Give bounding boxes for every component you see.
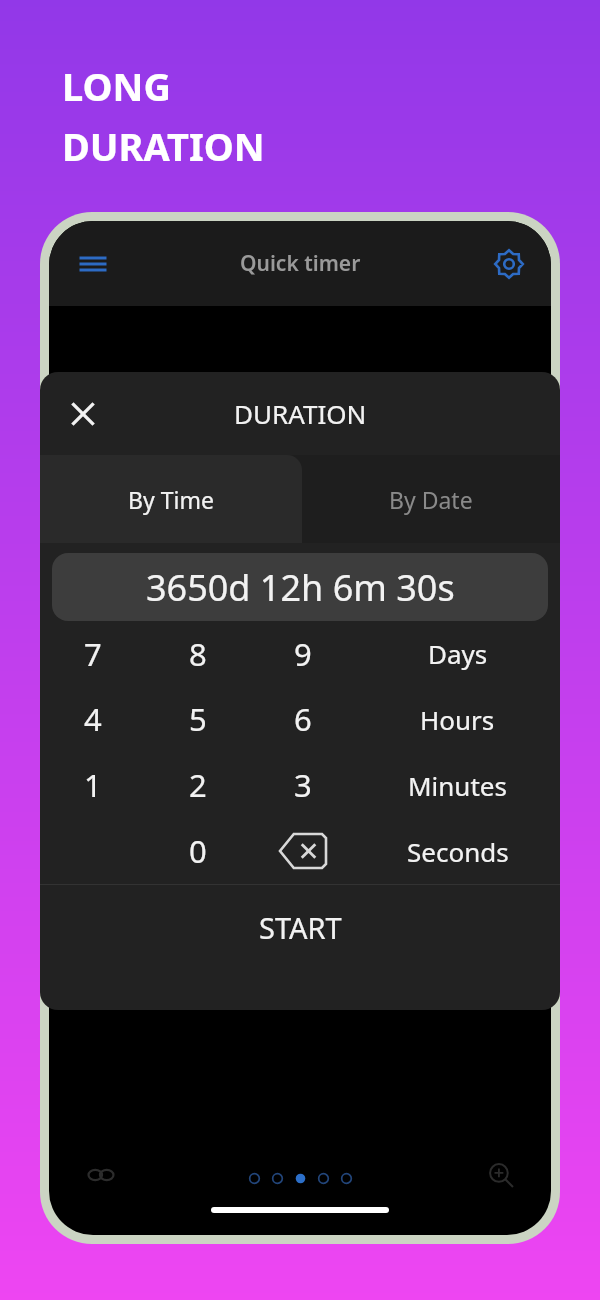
button[interactable]: 8 [145, 621, 250, 686]
staticText: DURATION [234, 396, 367, 431]
button[interactable]: 9 [250, 621, 355, 686]
button[interactable]: By Date [302, 455, 560, 543]
staticText: DURATION [62, 120, 265, 172]
button[interactable]: 7 [40, 621, 145, 686]
button[interactable]: Close [54, 385, 112, 443]
button[interactable]: START [40, 885, 560, 969]
staticText: 4 [84, 698, 102, 740]
button[interactable]: Zoom in [479, 1153, 523, 1197]
button[interactable]: Settings [485, 240, 533, 288]
button[interactable]: Backspace [250, 818, 355, 884]
staticText: By Date [389, 484, 473, 515]
staticText: 0 [189, 830, 207, 872]
staticText: By Time [128, 484, 214, 515]
button[interactable]: 6 [250, 686, 355, 752]
staticText: START [259, 908, 342, 947]
button[interactable]: 2 [145, 752, 250, 818]
staticText: 3 [294, 764, 312, 806]
staticText: LONG [62, 60, 171, 112]
staticText: 6 [294, 698, 312, 740]
staticText: 1 [84, 764, 102, 806]
button[interactable]: Minutes [355, 752, 560, 818]
button[interactable]: 0 [145, 818, 250, 884]
button[interactable]: Seconds [355, 818, 560, 884]
button[interactable]: 3 [250, 752, 355, 818]
staticText: 5 [189, 698, 207, 740]
button[interactable]: 1 [40, 752, 145, 818]
staticText: Hours [420, 702, 495, 737]
button[interactable]: Days [355, 621, 560, 686]
staticText: 2 [189, 764, 207, 806]
button[interactable]: 5 [145, 686, 250, 752]
staticText: Days [428, 636, 488, 671]
staticText: 7 [84, 633, 102, 675]
button[interactable]: By Time [40, 455, 302, 543]
staticText: Quick timer [240, 249, 361, 278]
staticText: 3650d 12h 6m 30s [146, 563, 455, 612]
staticText: Minutes [408, 768, 507, 803]
button[interactable]: Link [79, 1153, 123, 1197]
button[interactable]: 3650d 12h 6m 30s [52, 553, 548, 621]
button[interactable]: 4 [40, 686, 145, 752]
staticText: 8 [189, 633, 207, 675]
staticText: 9 [294, 633, 312, 675]
button[interactable]: Hours [355, 686, 560, 752]
button[interactable]: Menu [69, 240, 117, 288]
staticText: Seconds [407, 834, 509, 869]
